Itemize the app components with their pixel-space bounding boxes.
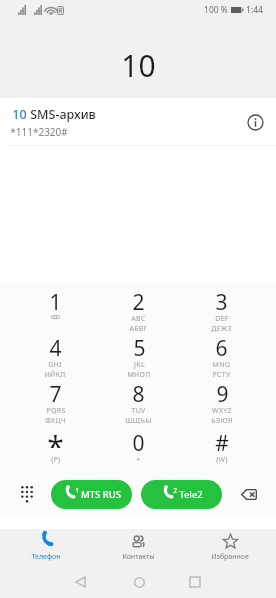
staticText: # [215, 429, 229, 451]
staticText: + [136, 455, 141, 465]
staticText: ШЩЪЫ [125, 416, 152, 424]
staticText: ДЕЖЗ [211, 324, 232, 332]
staticText: Tele2 [179, 488, 203, 501]
staticText: 10 [12, 106, 27, 123]
staticText: 7 [49, 380, 62, 402]
staticText: 1 [49, 288, 62, 310]
button[interactable]: Backspace [235, 480, 263, 508]
staticText: 10 [121, 45, 156, 86]
staticText: 2 [132, 288, 145, 310]
button[interactable]: 1 [13, 288, 97, 332]
staticText: 1 [75, 486, 79, 495]
staticText: ФХЦЧ [45, 416, 66, 424]
button[interactable]: Избранное [184, 529, 276, 566]
staticText: 9 [216, 380, 229, 402]
staticText: 6 [215, 334, 228, 356]
staticText: GHI [48, 360, 62, 370]
staticText: 0 [132, 429, 145, 451]
staticText: РСТУ [212, 370, 231, 378]
button[interactable]: Телефон [0, 529, 92, 566]
staticText: ИЙКЛ [44, 370, 66, 378]
staticText: *111*2320# [10, 125, 68, 139]
staticText: MTS RUS [81, 488, 121, 501]
button[interactable]: Recents [183, 570, 207, 594]
button[interactable]: 2 [97, 288, 180, 332]
button[interactable]: Dialpad [13, 480, 41, 508]
staticText: JKL [134, 360, 145, 370]
staticText: DEF [215, 314, 229, 324]
staticText: * [47, 426, 64, 448]
button[interactable]: Info [241, 108, 269, 136]
button[interactable]: Home [127, 570, 151, 594]
button[interactable]: Back [68, 570, 92, 594]
staticText: SMS-архив [30, 106, 96, 123]
button[interactable]: 2 [141, 480, 222, 509]
staticText: 100 % [204, 4, 228, 16]
button[interactable]: 9 [180, 380, 263, 424]
button[interactable]: 7 [13, 380, 97, 424]
staticText: 5 [133, 334, 146, 356]
staticText: Контакты [122, 552, 155, 562]
staticText: МНОП [127, 370, 151, 378]
staticText: (W) [216, 455, 228, 465]
staticText: 2 [173, 486, 177, 495]
staticText: 3 [215, 288, 228, 310]
staticText: АБВГ [129, 324, 148, 332]
staticText: 8 [132, 380, 145, 402]
staticText: WXYZ [212, 406, 232, 416]
button[interactable]: 1 [51, 480, 132, 509]
button[interactable]: 10 [0, 98, 276, 146]
staticText: Телефон [31, 552, 61, 562]
staticText: (P) [51, 455, 61, 465]
button[interactable]: 6 [180, 334, 263, 378]
staticText: 1:44 [246, 4, 263, 16]
staticText: PQRS [46, 406, 66, 416]
button[interactable]: 0 [97, 429, 180, 473]
staticText: TUV [131, 406, 146, 416]
staticText: 4 [49, 334, 62, 356]
button[interactable]: 4 [13, 334, 97, 378]
button[interactable]: 8 [97, 380, 180, 424]
staticText: ЬЭЮЯ [211, 416, 233, 424]
staticText: MNO [212, 360, 231, 370]
staticText: Избранное [211, 552, 249, 562]
button[interactable]: # [180, 429, 263, 473]
button[interactable]: * [13, 429, 97, 473]
button[interactable]: 5 [97, 334, 180, 378]
button[interactable]: Контакты [92, 529, 184, 566]
staticText: ABC [131, 314, 146, 324]
button[interactable]: 3 [180, 288, 263, 332]
